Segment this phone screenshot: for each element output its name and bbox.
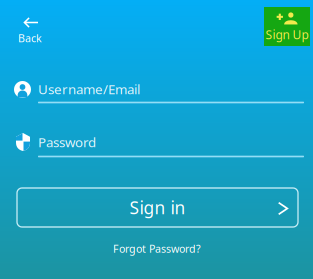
staticText: Forgot Password? [113,241,201,256]
staticText: Sign Up [265,26,308,42]
button[interactable]: Sign Up [264,7,310,46]
staticText: Password [38,133,96,151]
staticText: Sign in [129,196,185,219]
staticText: Back [18,31,42,45]
button[interactable]: Forgot Password? [103,235,211,262]
button[interactable]: Back [9,9,53,51]
button[interactable]: Sign in [17,188,298,227]
staticText: Username/Email [38,80,140,98]
